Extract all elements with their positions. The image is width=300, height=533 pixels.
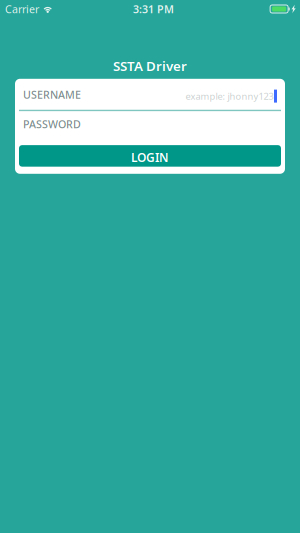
- staticText: USERNAME: [23, 87, 81, 102]
- staticText: SSTA Driver: [113, 57, 187, 75]
- button[interactable]: LOGIN: [19, 145, 281, 167]
- staticText: PASSWORD: [23, 117, 81, 131]
- staticText: Carrier: [5, 2, 39, 16]
- button[interactable]: PASSWORD: [19, 111, 281, 137]
- staticText: example: jhonny123: [185, 90, 273, 102]
- staticText: 3:31 PM: [133, 2, 174, 16]
- button[interactable]: USERNAME: [19, 79, 281, 110]
- staticText: LOGIN: [131, 149, 169, 165]
